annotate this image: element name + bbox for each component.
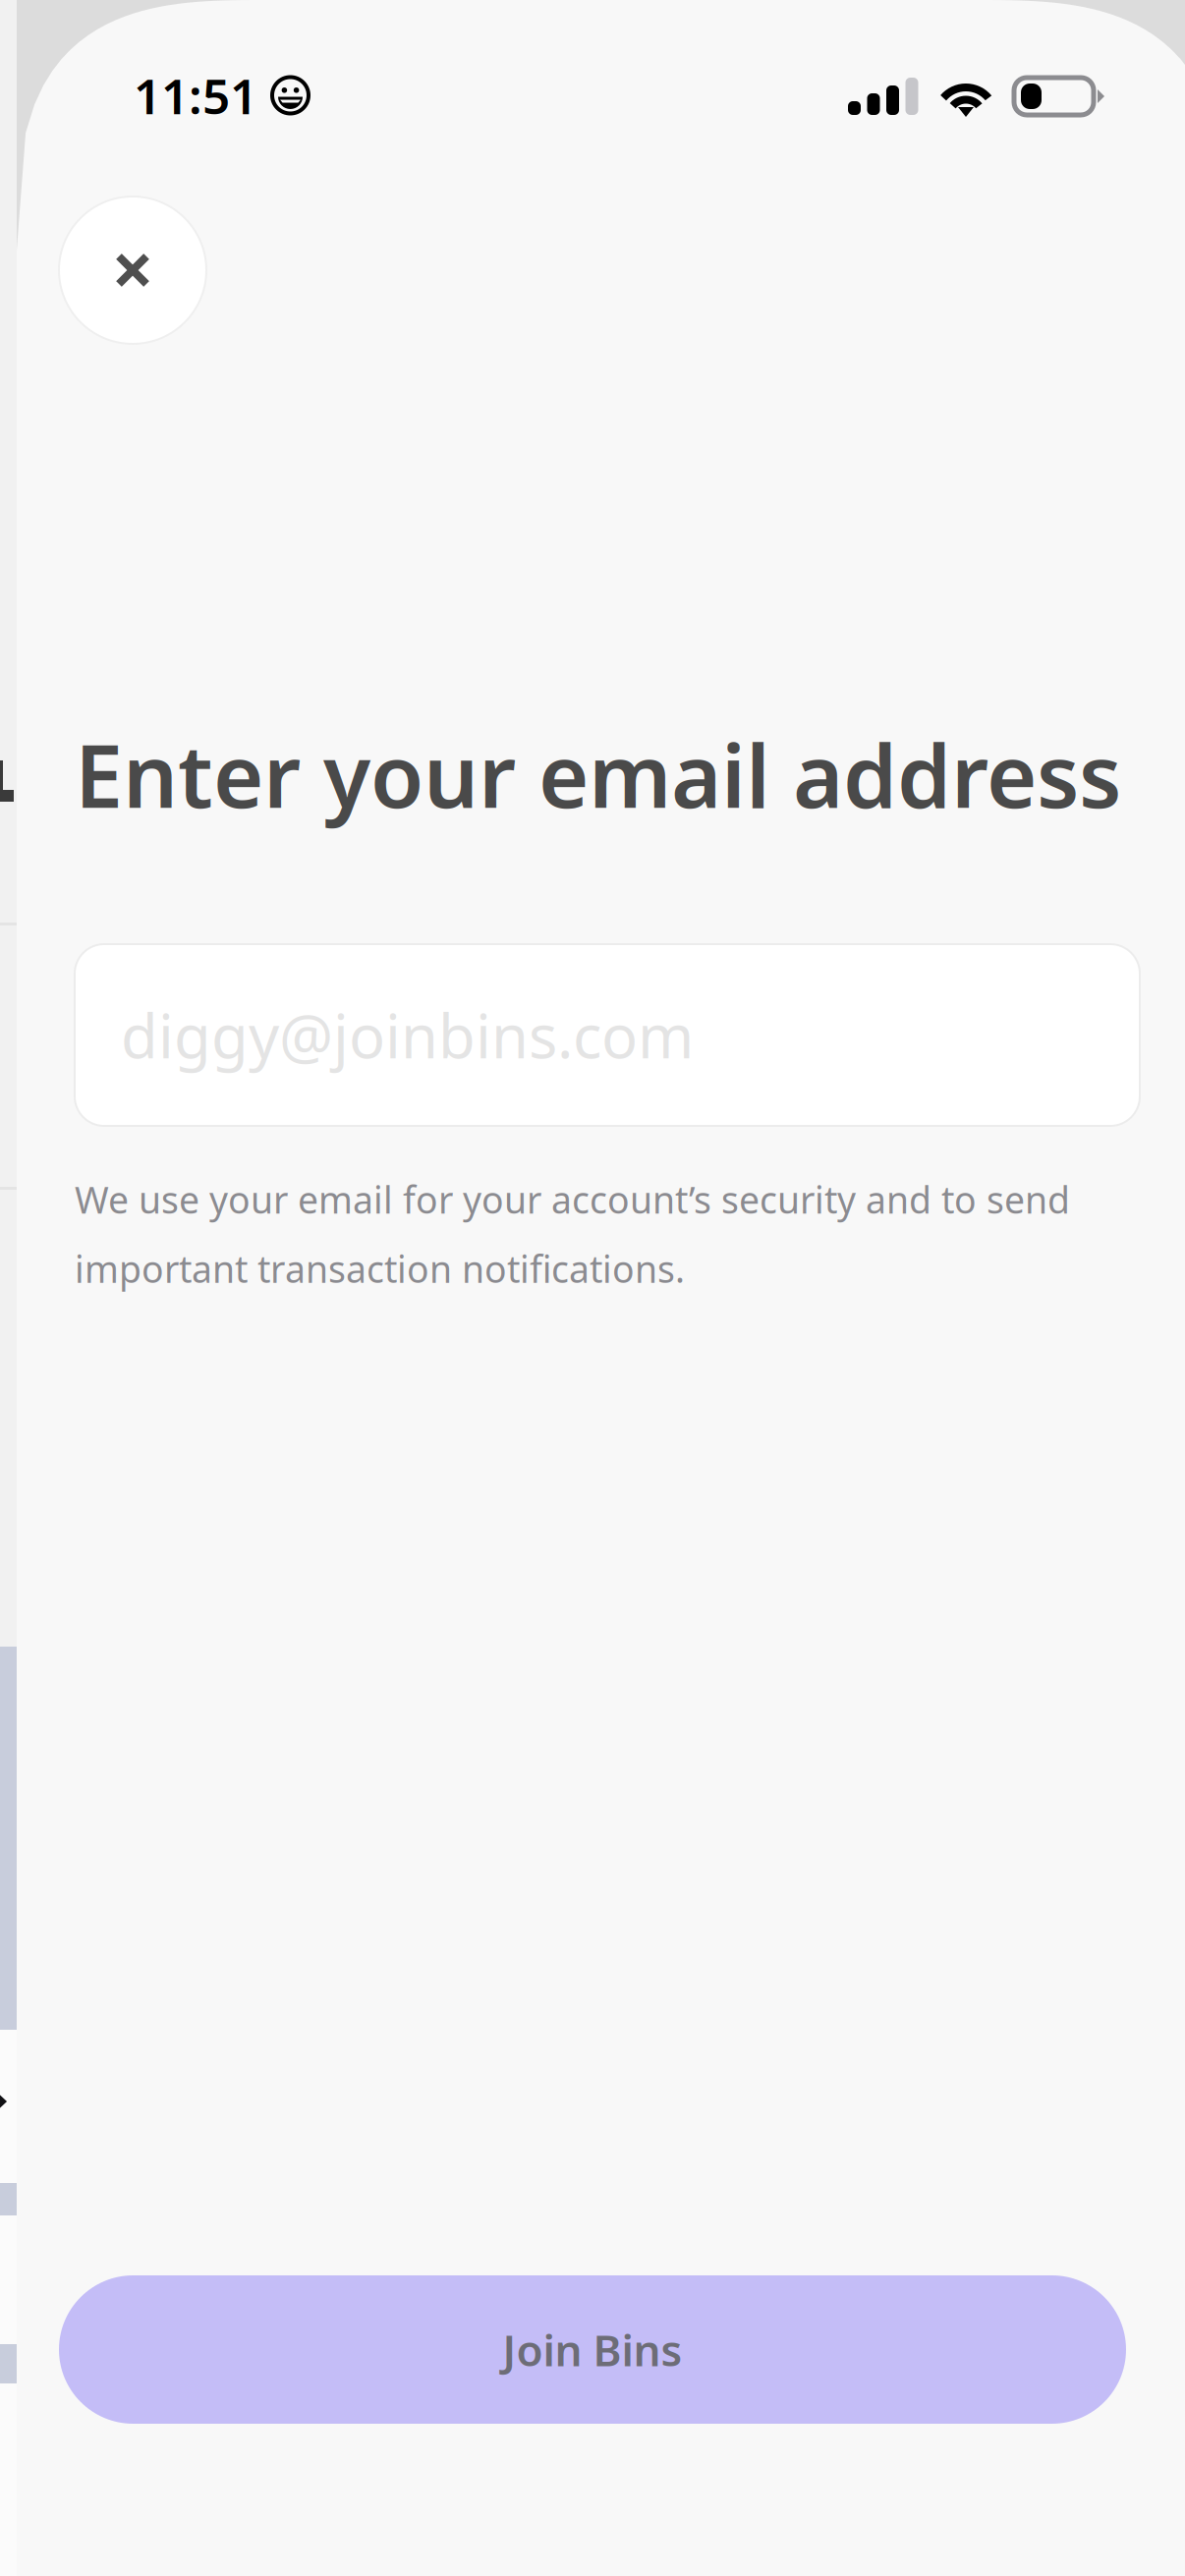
staticText: Join Bins [503, 2321, 682, 2378]
button[interactable]: Close [59, 196, 206, 344]
staticText: We use your email for your account’s sec… [75, 1175, 1070, 1293]
staticText: diggy@joinbins.com [121, 995, 694, 1075]
button[interactable]: Join Bins [59, 2275, 1126, 2424]
staticText: 11:51 [134, 63, 257, 127]
staticText: Enter your email address [75, 717, 1121, 832]
